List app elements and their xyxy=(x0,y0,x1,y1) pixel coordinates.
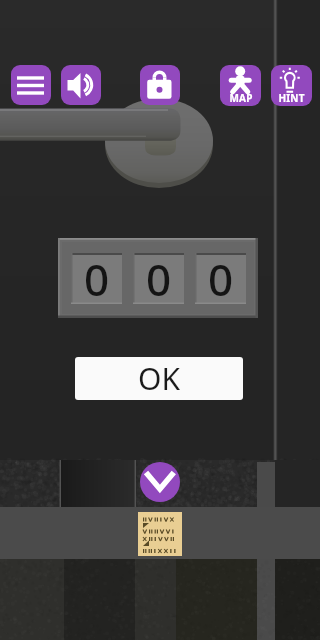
staticText: MAP xyxy=(229,91,253,105)
button[interactable]: 0 xyxy=(71,253,122,304)
button[interactable]: OK xyxy=(75,357,243,400)
button[interactable]: Menu xyxy=(11,65,51,105)
button[interactable]: Move down xyxy=(140,462,180,502)
staticText: OK xyxy=(138,358,180,399)
button[interactable]: 0 xyxy=(195,253,246,304)
button[interactable]: Lock xyxy=(140,65,180,105)
staticText: HINT xyxy=(278,91,305,105)
button[interactable]: Map xyxy=(220,65,261,106)
button[interactable]: Sound xyxy=(61,65,101,105)
button[interactable]: Note xyxy=(138,512,182,556)
button[interactable]: Hint xyxy=(271,65,312,106)
staticText: 0 xyxy=(146,249,172,300)
staticText: 0 xyxy=(208,249,234,300)
staticText: 0 xyxy=(84,249,110,300)
button[interactable]: 0 xyxy=(133,253,184,304)
